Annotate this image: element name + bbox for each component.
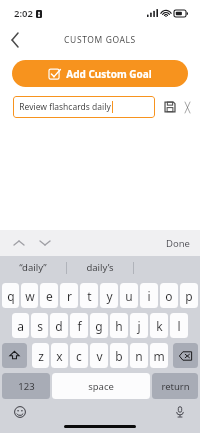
button[interactable]: Next field: [35, 233, 55, 253]
button[interactable]: f: [70, 313, 88, 338]
staticText: 123: [18, 380, 35, 393]
staticText: s: [37, 318, 43, 334]
staticText: k: [156, 318, 163, 334]
staticText: j: [137, 318, 141, 334]
staticText: b: [115, 348, 123, 364]
button[interactable]: z: [32, 343, 49, 368]
staticText: h: [115, 318, 123, 334]
staticText: z: [38, 348, 44, 364]
staticText: Review flashcards daily: [19, 101, 111, 113]
button[interactable]: c: [70, 343, 88, 368]
staticText: v: [96, 348, 103, 364]
staticText: q: [7, 288, 15, 304]
button[interactable]: a: [12, 313, 29, 338]
button[interactable]: o: [160, 283, 178, 308]
staticText: “daily”: [19, 261, 47, 274]
button[interactable]: m: [150, 343, 168, 368]
staticText: r: [67, 288, 72, 304]
staticText: c: [76, 348, 82, 364]
staticText: i: [147, 288, 151, 304]
button[interactable]: v: [90, 343, 108, 368]
button[interactable]: j: [130, 313, 148, 338]
staticText: 2:02: [14, 7, 33, 20]
staticText: t: [87, 288, 92, 304]
staticText: Add Custom Goal: [66, 67, 152, 81]
staticText: g: [95, 318, 103, 334]
button[interactable]: h: [110, 313, 128, 338]
button[interactable]: daily’s: [67, 256, 133, 279]
button[interactable]: n: [130, 343, 148, 368]
staticText: o: [165, 288, 173, 304]
button[interactable]: t: [80, 283, 98, 308]
button[interactable]: q: [2, 283, 19, 308]
button[interactable]: k: [150, 313, 168, 338]
button[interactable]: Previous field: [9, 233, 29, 253]
staticText: l: [177, 318, 181, 334]
button[interactable]: u: [120, 283, 138, 308]
button[interactable]: e: [40, 283, 58, 308]
button[interactable]: l: [170, 313, 188, 338]
staticText: e: [46, 288, 53, 304]
button[interactable]: Review flashcards daily: [13, 96, 155, 118]
staticText: d: [55, 318, 63, 334]
staticText: n: [135, 348, 143, 364]
button[interactable]: x: [51, 343, 68, 368]
staticText: a: [17, 318, 24, 334]
staticText: daily’s: [86, 261, 114, 274]
button[interactable]: Add Custom Goal: [12, 60, 188, 87]
button[interactable]: Dictation: [172, 404, 188, 420]
button[interactable]: i: [140, 283, 158, 308]
button[interactable]: b: [110, 343, 128, 368]
button[interactable]: Save: [161, 98, 179, 116]
button[interactable]: Backspace: [173, 343, 198, 368]
button[interactable]: space: [52, 373, 150, 399]
staticText: space: [88, 380, 114, 393]
button[interactable]: w: [21, 283, 38, 308]
staticText: w: [25, 288, 35, 304]
button[interactable]: “daily”: [0, 256, 66, 279]
button[interactable]: p: [180, 283, 198, 308]
staticText: Done: [166, 237, 190, 250]
button[interactable]: y: [100, 283, 118, 308]
button[interactable]: 123: [2, 373, 50, 399]
staticText: f: [77, 318, 82, 334]
button[interactable]: Emoji: [12, 404, 28, 420]
button[interactable]: Shift: [2, 343, 27, 368]
staticText: u: [125, 288, 133, 304]
staticText: p: [185, 288, 193, 304]
button[interactable]: r: [60, 283, 78, 308]
staticText: CUSTOM GOALS: [64, 34, 136, 46]
button[interactable]: Done: [166, 237, 190, 250]
button[interactable]: Cancel: [185, 98, 190, 116]
staticText: y: [106, 288, 113, 304]
button[interactable]: s: [31, 313, 48, 338]
staticText: return: [161, 380, 190, 393]
button[interactable]: return: [152, 373, 198, 399]
button[interactable]: g: [90, 313, 108, 338]
staticText: m: [153, 348, 165, 364]
staticText: x: [56, 348, 63, 364]
button[interactable]: d: [50, 313, 68, 338]
button[interactable]: Back: [0, 26, 30, 54]
